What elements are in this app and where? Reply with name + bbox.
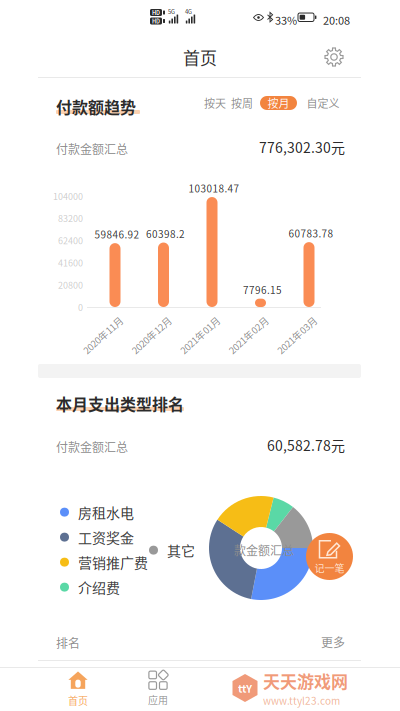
staticText: 4G — [185, 7, 192, 16]
staticText: 按月 — [267, 95, 289, 111]
staticText: 59846.92 — [94, 227, 139, 241]
staticText: 62400 — [58, 234, 83, 247]
staticText: HD — [152, 17, 160, 25]
staticText: 更多 — [321, 633, 345, 651]
staticText: 营销推广费 — [78, 552, 148, 572]
staticText: 记一笔 — [314, 561, 344, 575]
staticText: 104000 — [53, 189, 83, 202]
staticText: 按周 — [231, 95, 253, 111]
staticText: www.ttyl23.com — [263, 693, 340, 708]
staticText: 首页 — [68, 693, 88, 708]
staticText: 7796.15 — [243, 282, 282, 297]
staticText: 33% — [275, 12, 297, 28]
staticText: 本月支出类型排名 — [56, 392, 184, 415]
staticText: 83200 — [58, 212, 83, 225]
staticText: 2020年11月 — [78, 328, 128, 342]
staticText: 其它 — [167, 540, 195, 560]
staticText: 自定义 — [306, 95, 339, 111]
button[interactable]: 按周 — [229, 96, 255, 110]
staticText: 20:08 — [323, 12, 350, 28]
staticText: 天天游戏网 — [263, 668, 348, 693]
staticText: 5G — [168, 7, 175, 16]
button[interactable]: 按月 — [260, 96, 297, 110]
staticText: 20800 — [58, 278, 83, 291]
staticText: 776,302.30元 — [259, 137, 345, 157]
button[interactable]: 记一笔 — [306, 533, 353, 580]
staticText: 41600 — [58, 256, 83, 269]
staticText: 按天 — [204, 95, 226, 111]
staticText: 排名 — [56, 634, 80, 651]
staticText: 60783.78 — [288, 226, 333, 240]
button[interactable]: Settings — [317, 40, 351, 74]
button[interactable]: 应用 — [119, 668, 197, 710]
button[interactable]: 首页 — [39, 668, 117, 710]
staticText: 应用 — [148, 692, 168, 707]
staticText: 60,582.78元 — [267, 435, 345, 455]
staticText: 付款额趋势 — [56, 95, 136, 118]
staticText: 2021年03月 — [272, 328, 322, 342]
staticText: 介绍费 — [78, 577, 120, 597]
staticText: 房租水电 — [78, 502, 134, 522]
button[interactable]: 自定义 — [307, 96, 339, 110]
staticText: 2020年12月 — [126, 328, 176, 342]
staticText: 付款金额汇总 — [56, 140, 128, 157]
staticText: 103018.47 — [188, 181, 239, 195]
staticText: 2021年02月 — [223, 328, 273, 342]
staticText: 付款金额汇总 — [56, 438, 128, 455]
staticText: 工资奖金 — [78, 527, 134, 547]
staticText: 0 — [78, 300, 83, 313]
staticText: ttY — [238, 680, 252, 696]
staticText: 首页 — [183, 45, 217, 69]
staticText: 60398.2 — [146, 226, 185, 241]
button[interactable]: 按天 — [202, 96, 228, 110]
button[interactable]: 更多 — [315, 634, 345, 650]
staticText: HD — [152, 8, 160, 16]
staticText: 2021年01月 — [175, 328, 225, 342]
staticText: 款金额汇总 — [234, 541, 294, 559]
